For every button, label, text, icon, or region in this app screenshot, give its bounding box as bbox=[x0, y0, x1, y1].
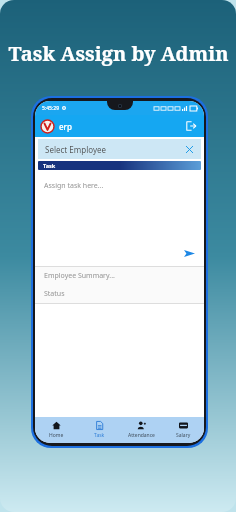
button[interactable]: Attendance bbox=[120, 417, 162, 443]
staticText: Task Assign by Admin bbox=[8, 40, 229, 67]
button[interactable]: Task bbox=[78, 417, 120, 443]
staticText: Attendance bbox=[128, 432, 155, 439]
button[interactable]: Select Employee bbox=[38, 139, 201, 159]
other: Clear bbox=[183, 143, 195, 155]
staticText: Task bbox=[94, 432, 105, 439]
staticText: Select Employee bbox=[45, 144, 106, 155]
button[interactable]: Status bbox=[35, 284, 204, 303]
button[interactable]: Assign task here... bbox=[35, 170, 204, 266]
staticText: Employee Summary... bbox=[44, 271, 115, 281]
button[interactable]: Home bbox=[35, 417, 78, 443]
staticText: erp bbox=[59, 121, 72, 132]
staticText: Assign task here... bbox=[44, 181, 104, 191]
staticText: Salary bbox=[176, 432, 191, 439]
button[interactable]: Send bbox=[181, 245, 197, 261]
button[interactable]: Employee Summary... bbox=[35, 267, 204, 284]
staticText: Home bbox=[49, 432, 64, 439]
staticText: 5:45:29 bbox=[42, 105, 60, 112]
button[interactable]: Salary bbox=[162, 417, 204, 443]
staticText: Status bbox=[44, 289, 65, 299]
staticText: Task bbox=[43, 162, 56, 169]
button[interactable]: Logout bbox=[183, 118, 199, 134]
